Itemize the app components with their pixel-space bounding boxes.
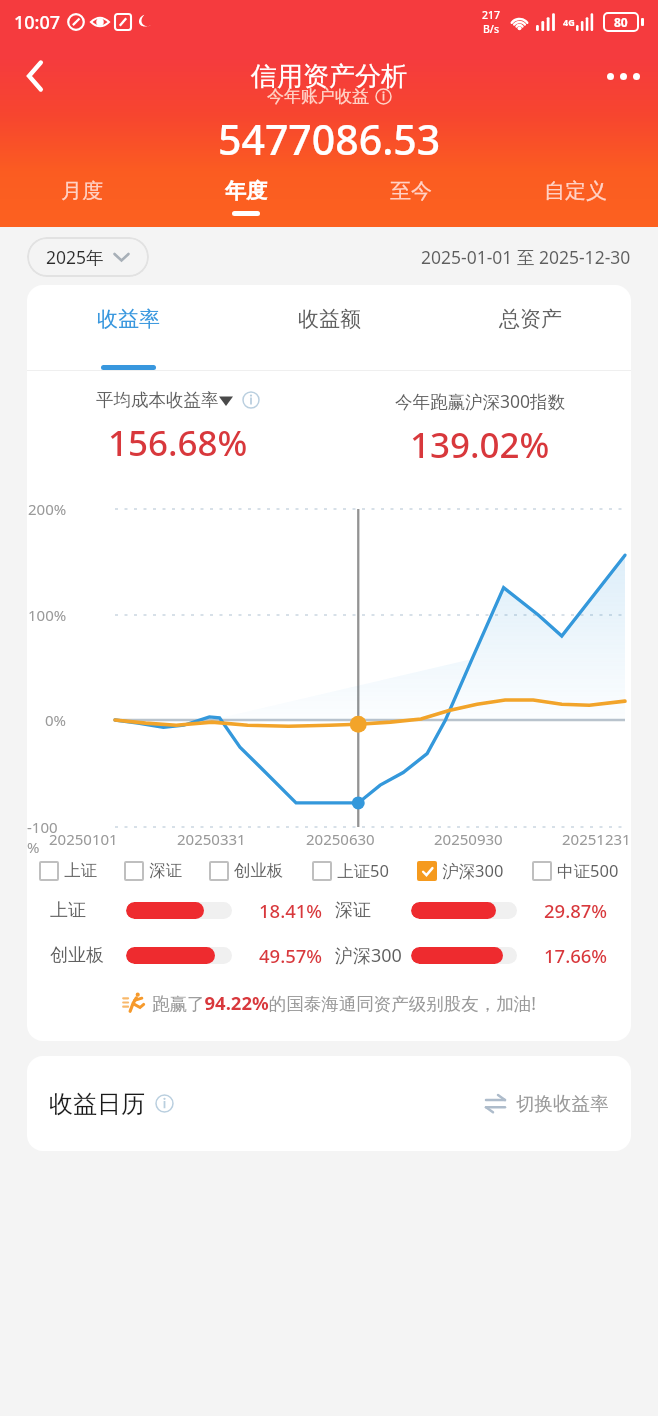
staticText: 收益额	[298, 306, 361, 332]
button[interactable]: Back	[0, 44, 70, 108]
button[interactable]: 总资产	[430, 285, 631, 370]
staticText: 创业板	[234, 860, 284, 881]
staticText: 切换收益率	[516, 1092, 609, 1115]
staticText: 年度	[225, 178, 267, 204]
staticText: B/s	[483, 22, 500, 36]
button[interactable]: 平均成本收益率	[96, 389, 260, 411]
button[interactable]: 至今	[328, 172, 493, 227]
staticText: 20250630	[306, 829, 375, 849]
staticText: 49.57%	[259, 943, 323, 968]
button[interactable]: 收益额	[229, 285, 430, 370]
button[interactable]: More options	[588, 44, 658, 108]
staticText: 跑赢了94.22%的国泰海通同资产级别股友，加油!	[152, 990, 536, 1015]
staticText: 今年账户收益	[267, 86, 369, 107]
button[interactable]: 深证	[124, 860, 182, 881]
staticText: 沪深300	[335, 943, 402, 968]
staticText: 18.41%	[259, 898, 323, 923]
staticText: 中证500	[557, 859, 619, 882]
staticText: 月度	[61, 178, 103, 204]
staticText: 深证	[335, 899, 371, 922]
staticText: 沪深300	[442, 859, 504, 882]
button[interactable]: 自定义	[493, 172, 658, 227]
staticText: 17.66%	[544, 943, 608, 968]
staticText: 20251231	[562, 829, 631, 849]
staticText: 自定义	[544, 178, 607, 204]
staticText: 200%	[28, 499, 67, 519]
staticText: 20250331	[177, 829, 246, 849]
button[interactable]: 切换收益率	[484, 1092, 609, 1115]
button[interactable]: 月度	[0, 172, 164, 227]
staticText: 217	[482, 8, 501, 22]
staticText: 80	[614, 14, 628, 30]
staticText: 0%	[45, 710, 67, 730]
button[interactable]: 创业板	[209, 860, 284, 881]
staticText: 创业板	[50, 944, 104, 967]
staticText: 100%	[28, 605, 67, 625]
staticText: 2025-01-01 至 2025-12-30	[421, 245, 631, 269]
staticText: 20250930	[434, 829, 503, 849]
staticText: 10:07	[14, 10, 61, 35]
button[interactable]: 中证500	[532, 859, 619, 882]
button[interactable]: 2025年	[27, 237, 149, 277]
staticText: -100%	[27, 817, 67, 857]
staticText: 上证	[50, 899, 86, 922]
staticText: 156.68%	[108, 419, 248, 467]
staticText: 29.87%	[544, 898, 608, 923]
staticText: 信用资产分析	[70, 60, 588, 93]
staticText: 总资产	[499, 306, 562, 332]
button[interactable]: 收益率	[27, 285, 229, 370]
staticText: 20250101	[49, 829, 118, 849]
staticText: 收益日历	[49, 1089, 145, 1119]
staticText: 今年跑赢沪深300指数	[395, 389, 566, 413]
staticText: 深证	[149, 860, 182, 881]
button[interactable]: 上证50	[312, 859, 389, 882]
button[interactable]: 沪深300	[417, 859, 504, 882]
staticText: 139.02%	[410, 421, 550, 469]
button[interactable]: 年度	[164, 172, 328, 227]
staticText: 上证50	[337, 859, 389, 882]
staticText: 至今	[390, 178, 432, 204]
button[interactable]: 上证	[39, 860, 97, 881]
staticText: 收益率	[97, 306, 160, 332]
staticText: 平均成本收益率	[96, 389, 219, 411]
staticText: 2025年	[46, 245, 104, 269]
staticText: 5477086.53	[218, 111, 441, 167]
staticText: 上证	[64, 860, 97, 881]
staticText: 4G	[563, 16, 575, 28]
